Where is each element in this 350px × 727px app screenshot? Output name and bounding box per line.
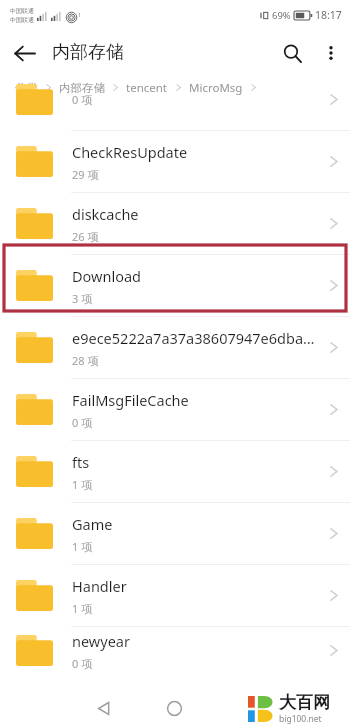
staticText: 1 项 [72,477,93,492]
button[interactable]: 分类 [15,81,38,95]
button[interactable]: fts [0,441,350,503]
button[interactable]: tencent [126,80,168,96]
button[interactable]: Home [156,690,192,726]
button[interactable]: CheckResUpdate [0,131,350,193]
button[interactable]: Search [272,33,312,73]
staticText: FailMsgFileCache [72,390,189,410]
button[interactable]: Back [6,35,42,71]
staticText: fts [72,452,90,472]
button[interactable]: MicroMsg [189,80,243,96]
staticText: 大百网 [279,692,330,713]
staticText: diskcache [72,204,139,224]
staticText: big100.net [279,713,322,725]
staticText: 中国联通 [10,7,34,15]
staticText: 29 项 [72,167,99,182]
staticText: MicroMsg [189,80,243,96]
staticText: Download [72,266,141,286]
button[interactable]: diskcache [0,193,350,255]
staticText: 18:17 [315,8,342,22]
button[interactable]: Download [0,255,350,317]
staticText: tencent [126,80,168,96]
staticText: newyear [72,631,130,651]
staticText: 1 项 [72,601,93,616]
staticText: 1 [78,12,81,19]
button[interactable]: 内部存储 [59,81,105,95]
button[interactable]: Handler [0,565,350,627]
staticText: 内部存储 [59,81,105,95]
button[interactable]: More options [312,34,350,72]
staticText: 28 项 [72,353,99,368]
staticText: 0 项 [72,415,93,430]
button[interactable]: Game [0,503,350,565]
button[interactable]: newyear [0,627,350,674]
staticText: 69% [272,9,291,22]
button[interactable]: FailMsgFileCache [0,379,350,441]
staticText: 分类 [15,81,38,95]
staticText: 3 项 [72,291,93,306]
staticText: CheckResUpdate [72,142,188,162]
staticText: 0 项 [72,92,93,107]
staticText: 内部存储 [52,41,124,64]
staticText: Handler [72,576,127,596]
staticText: 中国联通 [10,16,34,24]
staticText: 0 项 [72,656,93,671]
staticText: 26 项 [72,229,99,244]
staticText: e9ece5222a7a37a38607947e6dba… [72,328,315,348]
button[interactable]: 0 项 [0,69,350,131]
button[interactable]: Back [86,690,122,726]
staticText: 1 项 [72,539,93,554]
staticText: Game [72,514,113,534]
button[interactable]: e9ece5222a7a37a38607947e6dba… [0,317,350,379]
